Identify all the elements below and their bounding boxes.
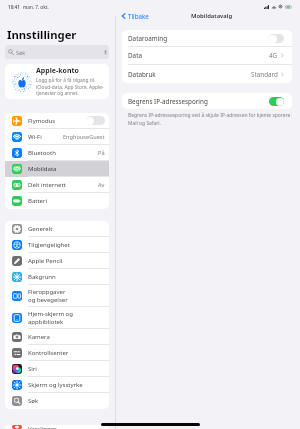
staticText: Søk [28,397,105,405]
staticText: Varslinger [28,425,105,429]
staticText: 4G [269,51,278,60]
button[interactable]: Siri [5,361,109,377]
button[interactable]: Kontrollsenter [5,345,109,361]
staticText: Dataroaming [128,34,269,43]
staticText: På [98,149,105,157]
staticText: Søk [16,49,26,56]
staticText: Batteri [28,197,105,205]
button[interactable]: Fleroppgaver og bevegelser [5,285,109,307]
staticText: Mobildata [28,165,105,173]
staticText: Wi-Fi [28,133,63,141]
staticText: Databruk [128,70,251,79]
staticText: Mobildatavalg [191,12,233,20]
button[interactable]: Generelt [5,221,109,237]
button[interactable]: Bluetooth [5,145,109,161]
button[interactable]: Kamera [5,329,109,345]
button[interactable]: Tilbake [120,12,150,20]
staticText: Flymodus [28,117,86,125]
staticText: Bluetooth [28,149,98,157]
staticText: Generelt [28,225,105,233]
button[interactable]: Databruk [122,65,292,83]
staticText: Skjerm og lysstyrke [28,381,105,389]
button[interactable]: Apple Pencil [5,253,109,269]
staticText: Standard [251,70,278,79]
button[interactable]: Tilgjengelighet [5,237,109,253]
button[interactable]: Flymodus [5,113,109,129]
staticText: EnghouseGuest [63,133,105,141]
staticText: man. 7. okt. [23,4,49,10]
staticText: Apple-konto [36,66,79,76]
staticText: Kamera [28,333,105,341]
button[interactable]: Dataroaming [122,30,292,47]
button[interactable]: Søk [5,45,109,59]
staticText: Begrens IP-adressesporing [128,97,269,106]
button[interactable]: Delt internett [5,177,109,193]
staticText: Siri [28,365,105,373]
staticText: Innstillinger [7,27,77,42]
staticText: Begrens IP-adressesporing ved å skjule I… [128,112,292,126]
button[interactable]: Begrens IP-adressesporing [122,93,292,109]
staticText: Data [128,51,269,60]
staticText: Bakgrunn [28,273,105,281]
staticText: Av [98,181,105,189]
button[interactable]: Skjerm og lysstyrke [5,377,109,393]
staticText: Tilgjengelighet [28,241,105,249]
button[interactable]: Apple-konto [5,64,109,99]
button[interactable]: Søk [5,393,109,409]
button[interactable]: Batteri [5,193,109,209]
staticText: Hjem-skjerm og appbibliotek [28,310,105,325]
button[interactable]: Varslinger [5,425,109,429]
staticText: Tilbake [128,12,149,20]
button[interactable]: Hjem-skjerm og appbibliotek [5,307,109,329]
staticText: Logg på for å få tilgang til iCloud-data… [36,77,104,97]
button[interactable]: Data [122,47,292,65]
button[interactable]: Mobildata [5,161,109,177]
staticText: Kontrollsenter [28,349,105,357]
staticText: Delt internett [28,181,98,189]
staticText: Apple Pencil [28,257,105,265]
button[interactable]: Bakgrunn [5,269,109,285]
staticText: Fleroppgaver og bevegelser [28,288,105,303]
button[interactable]: Wi-Fi [5,129,109,145]
staticText: 10:41 [8,4,20,10]
